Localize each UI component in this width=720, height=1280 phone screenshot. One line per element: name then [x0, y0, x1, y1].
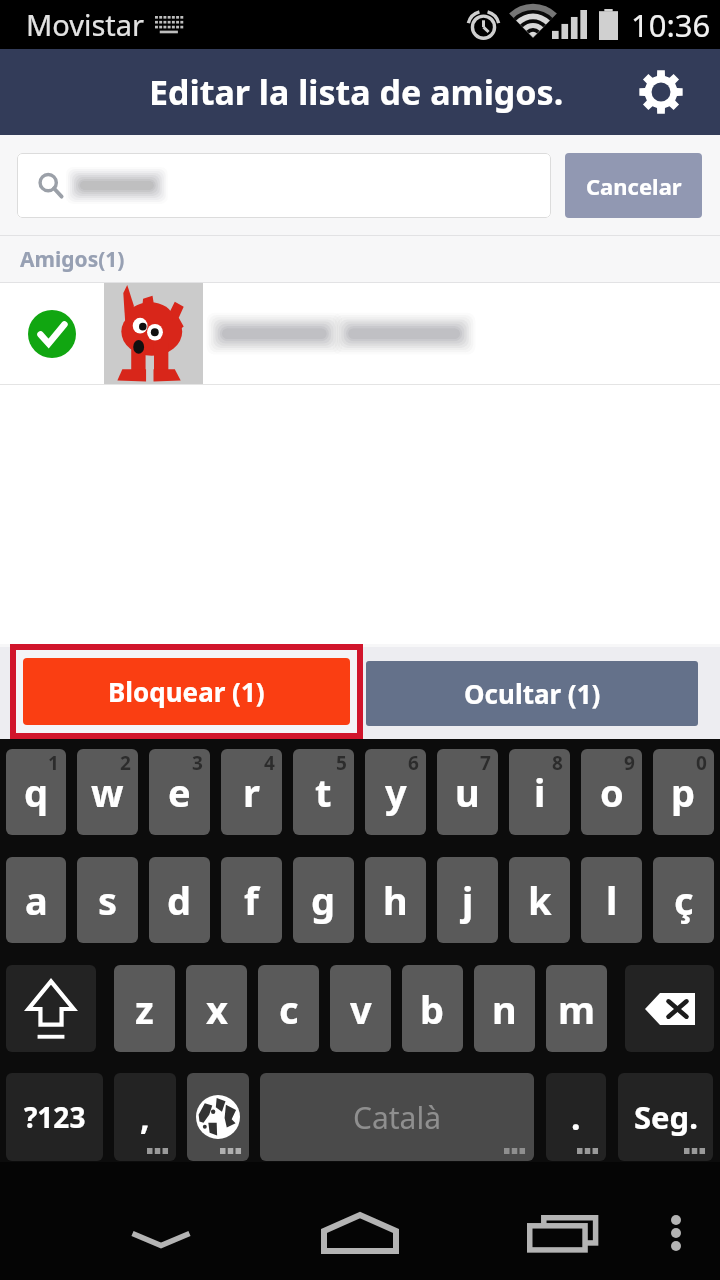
button[interactable]: i: [509, 749, 570, 835]
staticText: 10:36: [631, 4, 711, 46]
staticText: s: [98, 874, 118, 926]
staticText: z: [135, 983, 154, 1035]
button[interactable]: Settings: [635, 66, 687, 118]
button[interactable]: x: [186, 965, 247, 1052]
staticText: n: [492, 983, 517, 1035]
staticText: Cancelar: [586, 171, 682, 201]
staticText: h: [383, 874, 408, 926]
button[interactable]: u: [437, 749, 498, 835]
button[interactable]: Cancelar: [565, 153, 702, 218]
staticText: d: [167, 874, 192, 926]
button[interactable]: Change language: [187, 1073, 249, 1161]
button[interactable]: [17, 153, 551, 218]
button[interactable]: o: [581, 749, 642, 835]
staticText: 4: [264, 750, 275, 776]
staticText: o: [600, 766, 624, 818]
staticText: 8: [552, 750, 563, 776]
button[interactable]: v: [330, 965, 391, 1052]
button[interactable]: d: [149, 857, 210, 943]
staticText: u: [455, 766, 480, 818]
staticText: Editar la lista de amigos.: [149, 69, 564, 115]
staticText: ?123: [24, 1098, 86, 1136]
button[interactable]: More options: [640, 1186, 712, 1280]
staticText: Seg.: [634, 1096, 698, 1138]
button[interactable]: Home: [300, 1186, 420, 1280]
button[interactable]: c: [258, 965, 319, 1052]
staticText: .: [571, 1094, 581, 1140]
staticText: g: [311, 874, 336, 926]
button[interactable]: r: [221, 749, 282, 835]
staticText: r: [243, 766, 260, 818]
button[interactable]: b: [402, 965, 463, 1052]
button[interactable]: Back: [101, 1186, 221, 1280]
button[interactable]: ,: [114, 1073, 176, 1161]
button[interactable]: w: [77, 749, 138, 835]
button[interactable]: ç: [653, 857, 714, 943]
button[interactable]: m: [546, 965, 607, 1052]
staticText: 2: [120, 750, 131, 776]
button[interactable]: l: [581, 857, 642, 943]
button[interactable]: Ocultar (1): [366, 661, 698, 726]
button[interactable]: k: [509, 857, 570, 943]
staticText: ,: [140, 1094, 150, 1140]
staticText: Ocultar (1): [464, 676, 601, 711]
staticText: 0: [696, 750, 707, 776]
staticText: j: [462, 874, 474, 926]
staticText: w: [91, 766, 124, 818]
button[interactable]: t: [293, 749, 354, 835]
staticText: p: [671, 766, 696, 818]
staticText: b: [420, 983, 445, 1035]
staticText: e: [168, 766, 191, 818]
staticText: f: [244, 874, 259, 926]
staticText: i: [534, 766, 546, 818]
staticText: c: [279, 983, 299, 1035]
staticText: q: [24, 766, 49, 818]
button[interactable]: g: [293, 857, 354, 943]
button[interactable]: q: [6, 749, 66, 835]
button[interactable]: [0, 283, 720, 384]
staticText: ç: [674, 874, 694, 926]
button[interactable]: z: [114, 965, 175, 1052]
staticText: Amigos(1): [20, 245, 125, 274]
staticText: k: [528, 874, 552, 926]
button[interactable]: h: [365, 857, 426, 943]
button[interactable]: ?123: [6, 1073, 103, 1161]
staticText: Movistar: [26, 5, 145, 44]
button[interactable]: .: [546, 1073, 606, 1161]
button[interactable]: Backspace: [625, 965, 714, 1052]
staticText: 3: [192, 750, 203, 776]
button[interactable]: s: [77, 857, 138, 943]
button[interactable]: n: [474, 965, 535, 1052]
staticText: l: [606, 874, 618, 926]
button[interactable]: a: [6, 857, 66, 943]
button[interactable]: Català: [260, 1073, 534, 1161]
button[interactable]: p: [653, 749, 714, 835]
staticText: 1: [48, 750, 59, 776]
button[interactable]: Seg.: [618, 1073, 713, 1161]
button[interactable]: e: [149, 749, 210, 835]
button[interactable]: Recents: [502, 1186, 622, 1280]
staticText: t: [315, 766, 332, 818]
button[interactable]: Bloquear (1): [23, 658, 350, 725]
button[interactable]: f: [221, 857, 282, 943]
button[interactable]: j: [437, 857, 498, 943]
staticText: m: [558, 983, 596, 1035]
staticText: a: [25, 874, 48, 926]
staticText: y: [385, 766, 407, 818]
button[interactable]: Shift: [6, 965, 96, 1052]
staticText: 5: [336, 750, 347, 776]
staticText: x: [206, 983, 228, 1035]
button[interactable]: y: [365, 749, 426, 835]
staticText: Català: [353, 1097, 442, 1138]
staticText: 6: [408, 750, 419, 776]
staticText: v: [350, 983, 372, 1035]
staticText: 7: [480, 750, 491, 776]
staticText: Bloquear (1): [108, 674, 265, 709]
staticText: 9: [624, 750, 635, 776]
